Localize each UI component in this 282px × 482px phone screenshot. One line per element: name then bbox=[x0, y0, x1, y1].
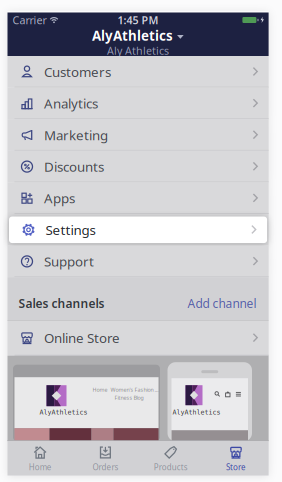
staticText: Home Women's Fashion Athletic Acce bbox=[92, 386, 158, 393]
staticText: Carrier bbox=[12, 13, 46, 27]
staticText: Support bbox=[44, 252, 94, 270]
staticText: Sales channels bbox=[18, 295, 104, 311]
staticText: AlyAthletics bbox=[92, 27, 173, 44]
button[interactable]: Products bbox=[138, 441, 203, 475]
button[interactable]: Settings bbox=[9, 216, 267, 243]
staticText: 1:45 PM bbox=[118, 13, 159, 27]
staticText: Online Store bbox=[44, 329, 120, 347]
staticText: Customers bbox=[44, 63, 111, 81]
staticText: Orders bbox=[92, 462, 118, 472]
button[interactable]: Home bbox=[7, 441, 73, 475]
staticText: Store bbox=[226, 462, 246, 472]
staticText: Discounts bbox=[44, 158, 104, 175]
staticText: AlyAthletics bbox=[39, 408, 87, 416]
staticText: Aly Athletics bbox=[107, 43, 169, 58]
button[interactable]: Analytics bbox=[7, 88, 269, 119]
staticText: Analytics bbox=[44, 94, 98, 112]
staticText: Marketing bbox=[44, 126, 108, 144]
button[interactable]: Apps bbox=[7, 182, 269, 214]
staticText: Apps bbox=[44, 189, 75, 207]
button[interactable]: Store bbox=[203, 441, 269, 475]
staticText: Fitness Blog bbox=[114, 394, 143, 401]
button[interactable]: Support bbox=[7, 246, 269, 277]
button[interactable]: AlyAthletics bbox=[92, 27, 184, 44]
staticText: Add channel bbox=[188, 295, 257, 311]
button[interactable]: Online Store bbox=[7, 320, 269, 356]
staticText: AlyAthletics bbox=[172, 408, 220, 416]
button[interactable]: Orders bbox=[73, 441, 138, 475]
staticText: Products bbox=[154, 462, 188, 472]
button[interactable]: Marketing bbox=[7, 119, 269, 151]
button[interactable]: Customers bbox=[7, 56, 269, 88]
staticText: Home bbox=[29, 462, 52, 472]
button[interactable]: Discounts bbox=[7, 151, 269, 182]
staticText: Settings bbox=[45, 221, 95, 239]
button[interactable]: Add channel bbox=[188, 295, 257, 311]
